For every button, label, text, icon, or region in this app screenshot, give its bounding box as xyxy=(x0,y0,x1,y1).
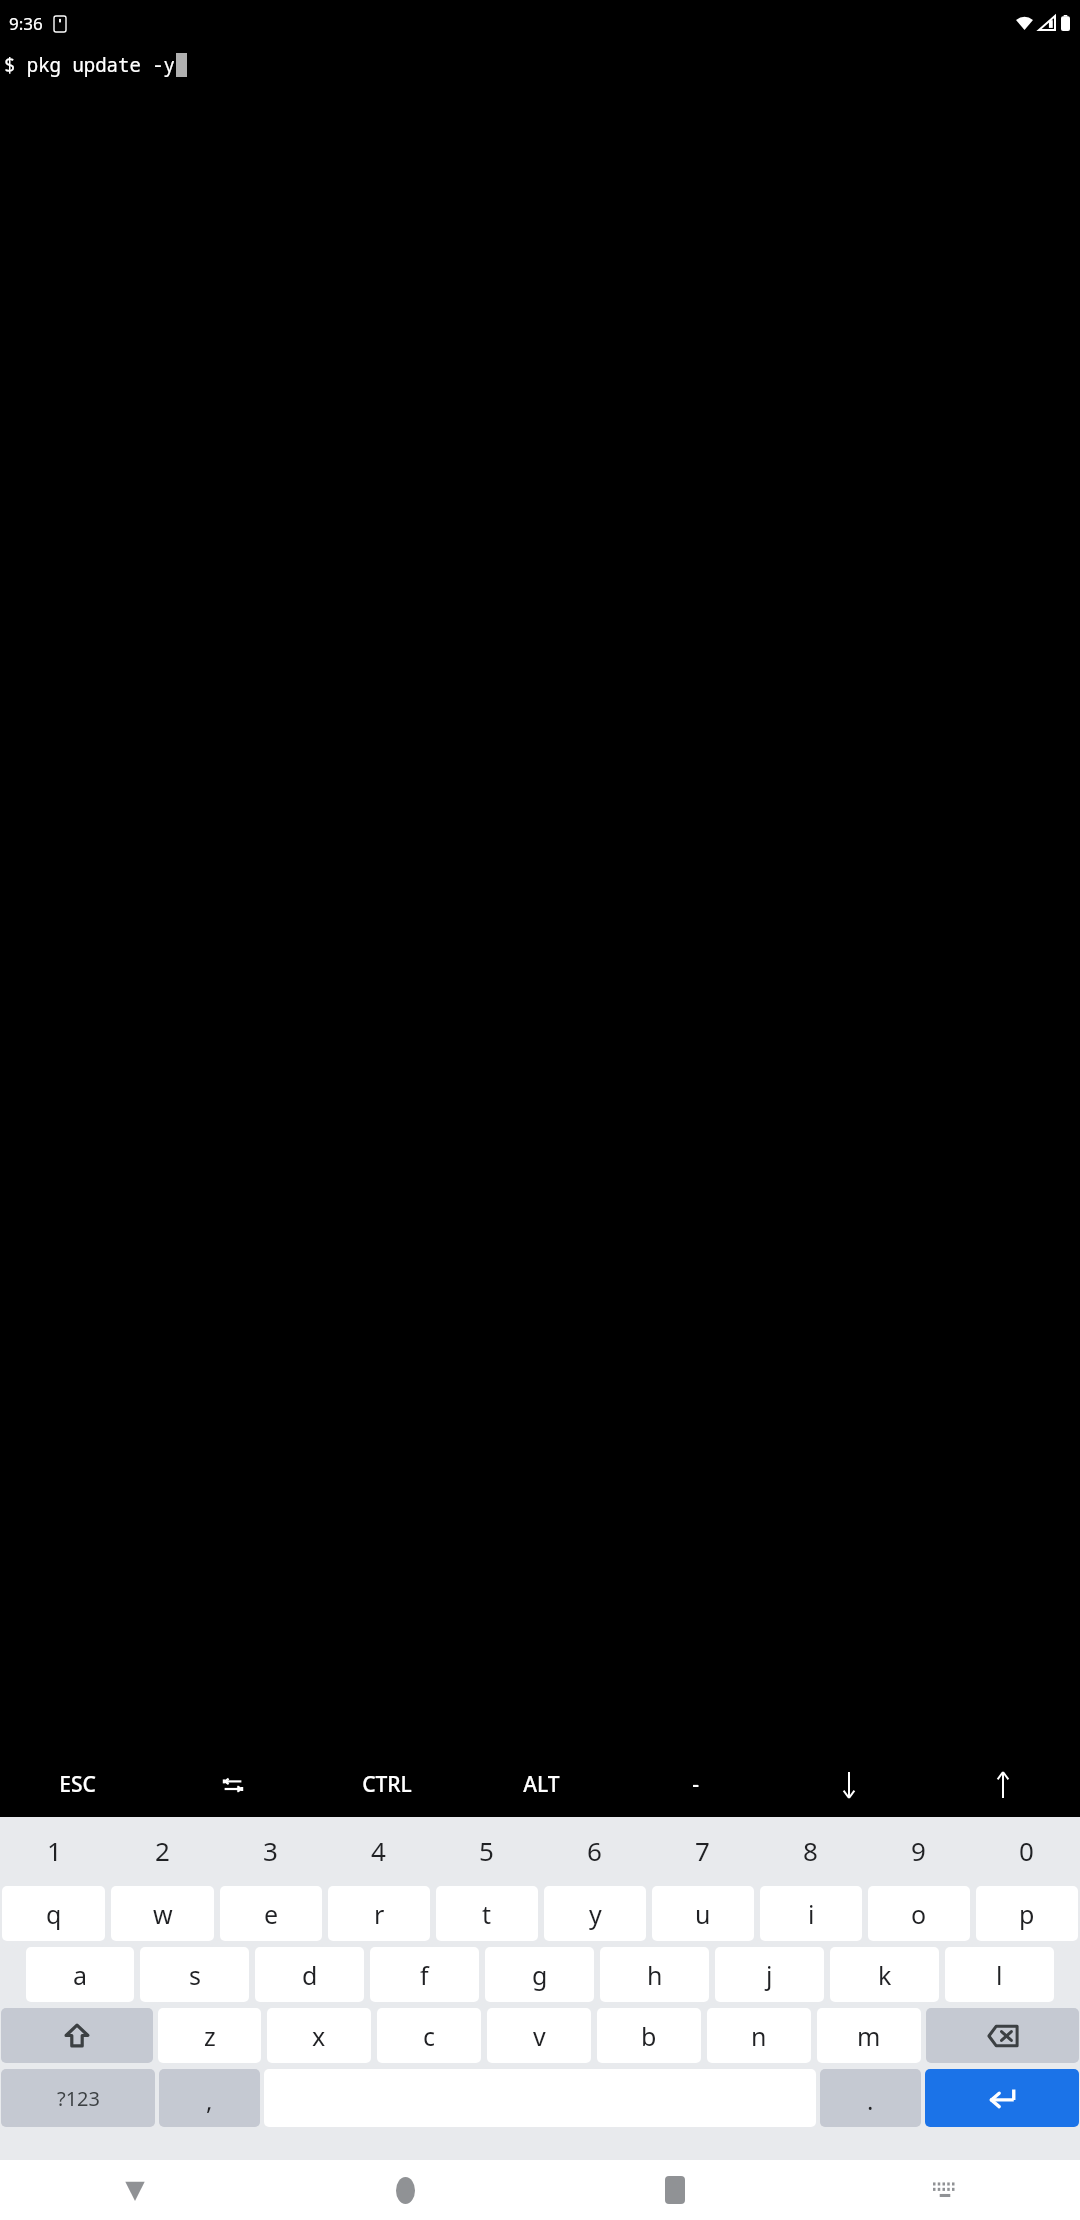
button[interactable]: Enter xyxy=(925,2069,1079,2127)
button[interactable]: Arrow up xyxy=(926,1752,1080,1817)
button[interactable]: Arrow down xyxy=(772,1752,926,1817)
staticText: 9:36 xyxy=(9,12,43,35)
button[interactable]: f xyxy=(370,1947,479,2002)
staticText: , xyxy=(206,2084,213,2117)
staticText: s xyxy=(189,1958,201,1992)
button[interactable]: 8 xyxy=(756,1817,864,1883)
button[interactable]: q xyxy=(2,1886,105,1941)
button[interactable]: s xyxy=(140,1947,249,2002)
staticText: i xyxy=(808,1897,815,1931)
staticText: b xyxy=(641,2019,657,2053)
button[interactable]: CTRL xyxy=(310,1752,464,1817)
staticText: q xyxy=(46,1897,62,1931)
staticText: e xyxy=(264,1897,279,1931)
button[interactable]: 9 xyxy=(864,1817,972,1883)
button[interactable]: 2 xyxy=(108,1817,216,1883)
button[interactable]: g xyxy=(485,1947,594,2002)
staticText: p xyxy=(1019,1897,1035,1931)
staticText: 1 xyxy=(47,1833,62,1868)
button[interactable]: t xyxy=(436,1886,538,1941)
staticText: l xyxy=(996,1958,1003,1992)
staticText: $ pkg update -y xyxy=(4,52,176,78)
button[interactable]: k xyxy=(830,1947,939,2002)
staticText: - xyxy=(692,1770,699,1799)
button[interactable]: 4 xyxy=(324,1817,432,1883)
staticText: t xyxy=(482,1897,492,1931)
staticText: c xyxy=(423,2019,436,2053)
button[interactable]: 5 xyxy=(432,1817,540,1883)
staticText: ESC xyxy=(59,1770,96,1799)
staticText: w xyxy=(153,1897,173,1931)
staticText: 2 xyxy=(155,1833,170,1868)
button[interactable]: d xyxy=(255,1947,364,2002)
staticText: 9 xyxy=(911,1833,926,1868)
button[interactable]: Tab xyxy=(155,1752,310,1817)
staticText: r xyxy=(374,1897,385,1931)
button[interactable]: Backspace xyxy=(926,2008,1079,2063)
staticText: v xyxy=(533,2019,546,2053)
staticText: ?123 xyxy=(57,2085,100,2112)
staticText: y xyxy=(589,1897,602,1931)
staticText: 0 xyxy=(1019,1833,1034,1868)
button[interactable]: a xyxy=(26,1947,134,2002)
staticText: o xyxy=(911,1897,927,1931)
staticText: n xyxy=(751,2019,767,2053)
staticText: 8 xyxy=(803,1833,818,1868)
button[interactable]: ?123 xyxy=(1,2069,155,2127)
button[interactable]: j xyxy=(715,1947,824,2002)
staticText: f xyxy=(420,1958,429,1992)
button[interactable]: Home xyxy=(270,2160,540,2220)
staticText: k xyxy=(878,1958,892,1992)
staticText: 4 xyxy=(371,1833,386,1868)
staticText: 7 xyxy=(695,1833,710,1868)
button[interactable]: Recent apps xyxy=(540,2160,810,2220)
staticText: . xyxy=(867,2084,874,2117)
button[interactable]: Switch keyboard xyxy=(810,2160,1080,2220)
button[interactable]: p xyxy=(976,1886,1078,1941)
button[interactable]: ESC xyxy=(0,1752,155,1817)
staticText: h xyxy=(647,1958,663,1992)
button[interactable]: Back xyxy=(0,2160,270,2220)
button[interactable]: e xyxy=(220,1886,322,1941)
button[interactable]: 6 xyxy=(540,1817,648,1883)
button[interactable]: u xyxy=(652,1886,754,1941)
staticText: 5 xyxy=(479,1833,494,1868)
button[interactable]: b xyxy=(597,2008,701,2063)
staticText: u xyxy=(695,1897,711,1931)
staticText: 6 xyxy=(587,1833,602,1868)
staticText: x xyxy=(312,2019,326,2053)
button[interactable]: i xyxy=(760,1886,862,1941)
button[interactable]: 1 xyxy=(0,1817,108,1883)
button[interactable]: - xyxy=(618,1752,772,1817)
button[interactable]: l xyxy=(945,1947,1054,2002)
staticText: a xyxy=(73,1958,88,1992)
button[interactable]: ALT xyxy=(464,1752,618,1817)
staticText: j xyxy=(766,1958,773,1992)
button[interactable]: w xyxy=(111,1886,214,1941)
button[interactable]: y xyxy=(544,1886,646,1941)
button[interactable]: n xyxy=(707,2008,811,2063)
button[interactable]: o xyxy=(868,1886,970,1941)
button[interactable]: h xyxy=(600,1947,709,2002)
button[interactable]: 3 xyxy=(216,1817,324,1883)
button[interactable]: , xyxy=(159,2069,260,2127)
button[interactable]: 0 xyxy=(972,1817,1080,1883)
staticText: d xyxy=(302,1958,318,1992)
button[interactable]: 7 xyxy=(648,1817,756,1883)
button[interactable]: c xyxy=(377,2008,481,2063)
button[interactable]: m xyxy=(817,2008,921,2063)
button[interactable]: z xyxy=(158,2008,261,2063)
staticText: ALT xyxy=(523,1770,560,1799)
staticText: z xyxy=(204,2019,216,2053)
staticText: m xyxy=(857,2019,881,2053)
staticText: 3 xyxy=(263,1833,278,1868)
staticText: CTRL xyxy=(362,1770,412,1799)
button[interactable]: x xyxy=(267,2008,371,2063)
button[interactable]: r xyxy=(328,1886,430,1941)
button[interactable]: . xyxy=(820,2069,921,2127)
staticText: g xyxy=(532,1958,548,1992)
button[interactable]: Shift xyxy=(1,2008,153,2063)
button[interactable]: v xyxy=(487,2008,591,2063)
